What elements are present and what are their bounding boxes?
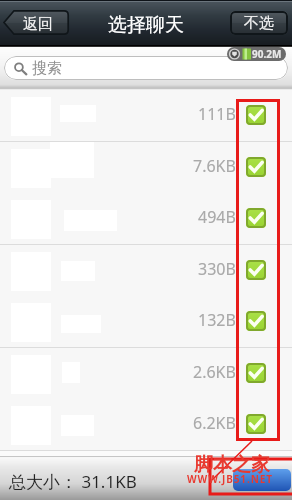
staticText: 不选 xyxy=(244,14,274,33)
button[interactable]: 搜索 xyxy=(4,56,288,80)
staticText: 330B xyxy=(198,258,236,280)
button[interactable]: 132B xyxy=(0,296,292,348)
staticText: 7.6KB xyxy=(193,155,236,177)
staticText: 搜索 xyxy=(32,59,62,78)
staticText: 90.2M xyxy=(252,47,282,61)
staticText: 选择聊天 xyxy=(108,13,184,37)
button[interactable]: 494B xyxy=(0,193,292,245)
button[interactable]: 不选 xyxy=(230,11,288,35)
button[interactable]: 返回 xyxy=(3,10,69,35)
button[interactable]: Selected xyxy=(246,414,266,434)
button[interactable]: Selected xyxy=(246,260,266,280)
button[interactable]: 330B xyxy=(0,245,292,297)
staticText: 494B xyxy=(198,206,236,228)
button[interactable]: Selected xyxy=(246,311,266,331)
button[interactable]: Storage 90.2M xyxy=(227,47,286,61)
staticText: 2.6KB xyxy=(193,361,236,383)
button[interactable]: Selected xyxy=(246,363,266,383)
staticText: 返回 xyxy=(23,15,53,34)
staticText: 总大小： 31.1KB xyxy=(9,470,137,493)
staticText: 6.2KB xyxy=(193,412,236,434)
staticText: 脚本之家 xyxy=(194,453,270,477)
button[interactable]: 6.2KB xyxy=(0,399,292,451)
button[interactable]: 7.6KB xyxy=(0,142,292,194)
button[interactable]: Selected xyxy=(246,157,266,177)
button[interactable]: Selected xyxy=(246,208,266,228)
button[interactable]: 111B xyxy=(0,90,292,142)
staticText: 132B xyxy=(198,309,236,331)
button[interactable]: Selected xyxy=(246,105,266,125)
staticText: WWW.JB51.NET xyxy=(187,472,273,486)
button[interactable]: 2.6KB xyxy=(0,348,292,400)
staticText: 111B xyxy=(198,103,236,125)
